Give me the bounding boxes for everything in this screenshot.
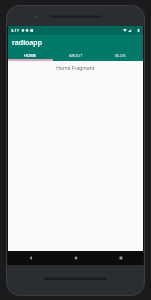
staticText: HOME bbox=[24, 53, 37, 58]
staticText: ABOUT bbox=[69, 53, 83, 58]
button[interactable]: Recents bbox=[98, 251, 143, 265]
staticText: BLOG bbox=[115, 53, 126, 58]
button[interactable]: Back bbox=[8, 251, 53, 265]
button[interactable]: BLOG bbox=[98, 50, 143, 61]
button[interactable]: Home bbox=[53, 251, 98, 265]
staticText: Home Fragment bbox=[56, 65, 95, 72]
staticText: 3:17 bbox=[11, 28, 19, 33]
button[interactable]: ABOUT bbox=[53, 50, 98, 61]
button[interactable]: HOME bbox=[8, 50, 53, 61]
staticText: radioapp bbox=[12, 38, 43, 48]
